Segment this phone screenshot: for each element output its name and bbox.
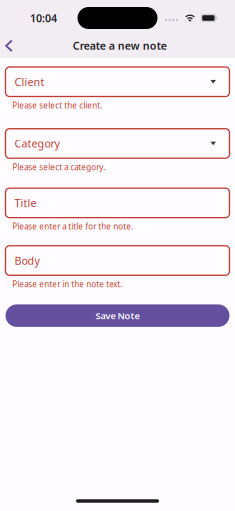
staticText: 10:04 [30, 11, 57, 25]
staticText: Save Note [95, 309, 139, 322]
staticText: Body [14, 253, 39, 268]
button[interactable]: Client [5, 67, 229, 96]
staticText: Please enter in the note text. [12, 279, 122, 289]
staticText: Title [14, 196, 36, 210]
staticText: Please select the client. [12, 100, 102, 111]
staticText: Client [14, 75, 44, 89]
button[interactable]: Save Note [5, 304, 229, 327]
button[interactable]: Category [5, 129, 229, 158]
staticText: Please enter a title for the note. [12, 221, 133, 232]
button[interactable]: Back [0, 35, 20, 57]
staticText: Create a new note [73, 38, 167, 53]
staticText: Category [14, 136, 59, 151]
staticText: Please select a category. [12, 162, 105, 172]
